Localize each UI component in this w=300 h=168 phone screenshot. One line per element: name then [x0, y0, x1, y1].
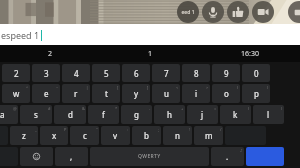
staticText: 2: [14, 68, 19, 79]
button[interactable]: n: [163, 126, 192, 145]
staticText: z: [22, 130, 26, 141]
staticText: eed 1: [181, 9, 195, 16]
button[interactable]: s: [20, 105, 52, 124]
staticText: y: [134, 88, 139, 99]
staticText: 16:30: [241, 49, 259, 59]
staticText: g: [134, 109, 139, 120]
button[interactable]: 9: [212, 64, 240, 82]
staticText: 7: [164, 68, 169, 79]
button[interactable]: b: [132, 126, 161, 145]
staticText: p: [254, 88, 259, 99]
staticText: =: [214, 106, 217, 111]
button[interactable]: 3: [32, 64, 60, 82]
staticText: 2: [48, 49, 53, 59]
staticText: 5: [104, 68, 109, 79]
button[interactable]: e: [32, 84, 60, 103]
staticText: :: [127, 127, 129, 132]
button[interactable]: w: [2, 84, 30, 103]
staticText: 3: [44, 68, 49, 79]
staticText: t: [105, 88, 108, 99]
button[interactable]: a: [0, 105, 18, 124]
button[interactable]: v: [101, 126, 130, 145]
staticText: (: [248, 106, 250, 111]
button[interactable]: l: [253, 105, 284, 124]
staticText: c: [83, 130, 87, 141]
button[interactable]: j: [187, 105, 218, 124]
staticText: o: [224, 88, 229, 99]
button[interactable]: m: [194, 126, 223, 145]
staticText: m: [205, 130, 213, 141]
staticText: #: [48, 106, 51, 111]
staticText: n: [175, 130, 180, 141]
button[interactable]: More: [288, 1, 300, 23]
staticText: @: [13, 106, 17, 111]
staticText: >: [206, 85, 209, 90]
button[interactable]: o: [212, 84, 240, 103]
button[interactable]: g: [121, 105, 152, 124]
staticText: ^: [26, 85, 29, 90]
button[interactable]: Video camera: [252, 1, 274, 23]
button[interactable]: h: [154, 105, 185, 124]
staticText: b: [144, 130, 149, 141]
staticText: (: [237, 85, 239, 90]
staticText: j: [201, 109, 204, 120]
button[interactable]: Playback speed: [177, 1, 199, 23]
button[interactable]: u: [152, 84, 180, 103]
button[interactable]: x: [40, 126, 68, 145]
staticText: <: [176, 85, 179, 90]
staticText: 1: [148, 49, 153, 59]
staticText: k: [233, 109, 238, 120]
button[interactable]: 2: [0, 45, 100, 62]
staticText: espeed 1: [1, 29, 40, 41]
button[interactable]: Like: [227, 1, 249, 23]
button[interactable]: 16:30: [200, 45, 300, 62]
button[interactable]: ,: [55, 147, 88, 166]
staticText: s: [34, 109, 38, 120]
button[interactable]: 5: [92, 64, 120, 82]
staticText: v: [113, 130, 118, 141]
button[interactable]: k: [220, 105, 251, 124]
staticText: QWERTY: [138, 153, 161, 160]
button[interactable]: f: [88, 105, 119, 124]
staticText: /: [220, 127, 222, 132]
staticText: -: [149, 106, 151, 111]
button[interactable]: 0: [242, 64, 270, 82]
button[interactable]: y: [122, 84, 150, 103]
button[interactable]: z: [10, 126, 38, 145]
staticText: _: [35, 127, 37, 132]
staticText: *: [115, 106, 118, 111]
staticText: +: [181, 106, 184, 111]
staticText: l: [267, 109, 270, 120]
button[interactable]: 6: [122, 64, 150, 82]
staticText: 0: [254, 68, 259, 79]
button[interactable]: t: [92, 84, 120, 103]
button[interactable]: c: [70, 126, 99, 145]
staticText: w: [13, 88, 20, 99]
staticText: 8: [194, 68, 199, 79]
staticText: u: [164, 88, 169, 99]
button[interactable]: 2: [2, 64, 30, 82]
staticText: i: [195, 88, 198, 99]
staticText: x: [52, 130, 57, 141]
button[interactable]: espeed 1: [0, 24, 300, 45]
button[interactable]: QWERTY: [90, 147, 209, 166]
button[interactable]: i: [182, 84, 210, 103]
button[interactable]: 1: [100, 45, 200, 62]
staticText: ~: [56, 85, 59, 90]
button[interactable]: d: [54, 105, 86, 124]
button[interactable]: Emoji: [20, 147, 53, 166]
button[interactable]: r: [62, 84, 90, 103]
staticText: ): [267, 85, 269, 90]
button[interactable]: 7: [152, 64, 180, 82]
button[interactable]: Microphone: [202, 1, 224, 23]
staticText: d: [68, 109, 73, 120]
button[interactable]: p: [242, 84, 270, 103]
button[interactable]: 8: [182, 64, 210, 82]
button[interactable]: Enter: [246, 147, 284, 166]
staticText: .: [226, 151, 229, 162]
button[interactable]: 4: [62, 64, 90, 82]
button[interactable]: .: [211, 147, 244, 166]
